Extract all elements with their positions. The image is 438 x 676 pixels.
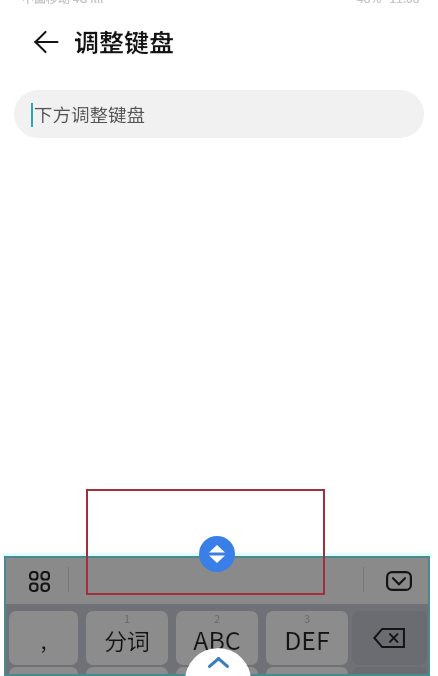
staticText: 2: [214, 611, 221, 626]
staticText: 48% 11:08: [357, 0, 420, 6]
staticText: DEF: [284, 621, 330, 657]
button[interactable]: ,: [9, 611, 78, 665]
button[interactable]: 下方调整键盘: [14, 90, 424, 138]
button[interactable]: Hide keyboard: [379, 561, 419, 601]
button[interactable]: Backspace: [352, 667, 427, 676]
button[interactable]: 2: [176, 611, 258, 665]
other: Backspace: [373, 626, 407, 650]
staticText: ABC: [193, 621, 241, 657]
button[interactable]: Expand keyboard: [185, 648, 251, 676]
button[interactable]: Keyboard menu: [18, 560, 60, 602]
button[interactable]: 1: [86, 611, 168, 665]
staticText: 分词: [104, 623, 150, 656]
staticText: 中国移动 4G ıllı: [22, 0, 104, 6]
button[interactable]: Back: [24, 20, 68, 64]
staticText: 3: [304, 611, 311, 626]
button[interactable]: [266, 667, 348, 676]
button[interactable]: [176, 667, 258, 676]
staticText: 1: [124, 611, 131, 626]
staticText: ,: [40, 623, 47, 655]
staticText: 下方调整键盘: [34, 101, 146, 128]
button[interactable]: [86, 667, 168, 676]
button[interactable]: [9, 667, 78, 676]
button[interactable]: Backspace: [352, 611, 427, 665]
button[interactable]: 3: [266, 611, 348, 665]
button[interactable]: Resize keyboard: [199, 536, 235, 572]
button[interactable]: 调整键盘: [74, 23, 175, 59]
